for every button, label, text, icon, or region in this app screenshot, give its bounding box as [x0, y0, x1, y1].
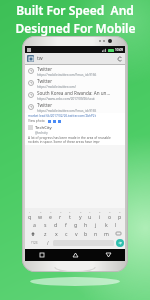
staticText: 9: [109, 210, 111, 213]
staticText: Designed For Mobile: [15, 20, 136, 36]
button[interactable]: v: [71, 229, 81, 238]
button[interactable]: Refresh: [116, 55, 123, 62]
staticText: f: [65, 221, 67, 228]
button[interactable]: Shift: [25, 229, 40, 238]
button[interactable]: Home: [59, 249, 92, 261]
staticText: n: [94, 230, 98, 237]
staticText: z: [44, 230, 47, 237]
staticText: w: [38, 213, 43, 220]
staticText: r: [59, 213, 62, 220]
button[interactable]: Twitter: [25, 65, 125, 77]
staticText: t: [69, 213, 71, 220]
staticText: 1: [29, 210, 31, 213]
button[interactable]: 1: [25, 209, 35, 220]
button[interactable]: 7: [85, 209, 95, 220]
staticText: View photo: [28, 119, 45, 123]
button[interactable]: Tabs: [27, 55, 34, 62]
staticText: 3: [50, 210, 52, 213]
staticText: h: [84, 221, 88, 228]
button[interactable]: Twitter: [25, 77, 125, 89]
button[interactable]: /: [42, 238, 53, 248]
staticText: 8: [99, 210, 101, 213]
staticText: l: [115, 221, 117, 228]
button[interactable]: 5: [65, 209, 75, 220]
button[interactable]: Back: [92, 249, 125, 261]
staticText: 10:09: [115, 48, 124, 52]
staticText: o: [108, 213, 112, 220]
button[interactable]: x: [51, 229, 61, 238]
button[interactable]: b: [81, 229, 91, 238]
button[interactable]: 2: [35, 209, 45, 220]
staticText: u: [88, 213, 92, 220]
staticText: y: [79, 213, 82, 220]
staticText: market lead 6k/2017/02/26.twitter.com/2b…: [28, 114, 96, 118]
button[interactable]: Tabs: [25, 53, 125, 64]
staticText: rockets in space. Some of these areas ha…: [28, 140, 100, 144]
staticText: a: [33, 221, 36, 228]
button[interactable]: a: [29, 220, 40, 229]
staticText: i: [99, 213, 101, 220]
staticText: https://mobile.twitter.com/: [37, 85, 76, 89]
staticText: tw: [37, 55, 43, 62]
staticText: /: [47, 240, 49, 246]
button[interactable]: ?123: [26, 238, 42, 248]
staticText: 4: [60, 210, 62, 213]
button[interactable]: 6: [75, 209, 85, 220]
staticText: 7: [89, 210, 91, 213]
staticText: A lot of progress has been made in the a…: [28, 136, 111, 140]
staticText: q: [28, 213, 32, 220]
button[interactable]: 8: [95, 209, 105, 220]
staticText: Twitter: [37, 66, 53, 72]
staticText: v: [75, 230, 78, 237]
staticText: https://www.cnbc.com/2017/09/26/sout: [37, 97, 95, 101]
button[interactable]: h: [81, 220, 91, 229]
staticText: 6: [80, 210, 82, 213]
staticText: j: [95, 221, 97, 228]
staticText: b: [84, 230, 88, 237]
staticText: s: [44, 221, 47, 228]
button[interactable]: Twitter: [25, 101, 125, 113]
button[interactable]: 0: [115, 209, 125, 220]
staticText: m: [104, 230, 109, 237]
staticText: @techcity: [35, 131, 48, 135]
staticText: g: [74, 221, 78, 228]
button[interactable]: 4: [55, 209, 65, 220]
staticText: 5: [69, 210, 71, 213]
button[interactable]: Recents: [25, 249, 59, 261]
button[interactable]: k: [101, 220, 111, 229]
button[interactable]: j: [91, 220, 101, 229]
button[interactable]: m: [101, 229, 111, 238]
staticText: p: [118, 213, 122, 220]
button[interactable]: 9: [105, 209, 115, 220]
staticText: e: [49, 213, 52, 220]
staticText: Twitter: [37, 102, 53, 108]
button[interactable]: l: [111, 220, 121, 229]
button[interactable]: c: [61, 229, 71, 238]
staticText: South Korea and Rwanda: An un...: [37, 90, 111, 96]
button[interactable]: f: [61, 220, 71, 229]
staticText: Built For Speed And: [16, 2, 134, 18]
staticText: https://mobile.twitter.com/?mus_id=9166: [37, 73, 97, 77]
staticText: 2: [40, 210, 42, 213]
staticText: d: [54, 221, 58, 228]
staticText: https://mobile.twitter.com/?mus_id=9165: [37, 109, 97, 113]
staticText: ?123: [31, 241, 38, 245]
staticText: k: [105, 221, 108, 228]
button[interactable]: s: [40, 220, 51, 229]
button[interactable]: South Korea and Rwanda: An un...: [25, 89, 125, 101]
staticText: Twitter: [37, 78, 53, 84]
button[interactable]: z: [40, 229, 51, 238]
staticText: 0: [119, 210, 121, 213]
button[interactable]: 3: [45, 209, 55, 220]
staticText: TechCity: [35, 125, 52, 131]
staticText: c: [65, 230, 68, 237]
button[interactable]: d: [51, 220, 61, 229]
button[interactable]: g: [71, 220, 81, 229]
button[interactable]: Go: [116, 239, 124, 247]
button[interactable]: Backspace: [111, 229, 125, 238]
button[interactable]: n: [91, 229, 101, 238]
staticText: x: [55, 230, 58, 237]
